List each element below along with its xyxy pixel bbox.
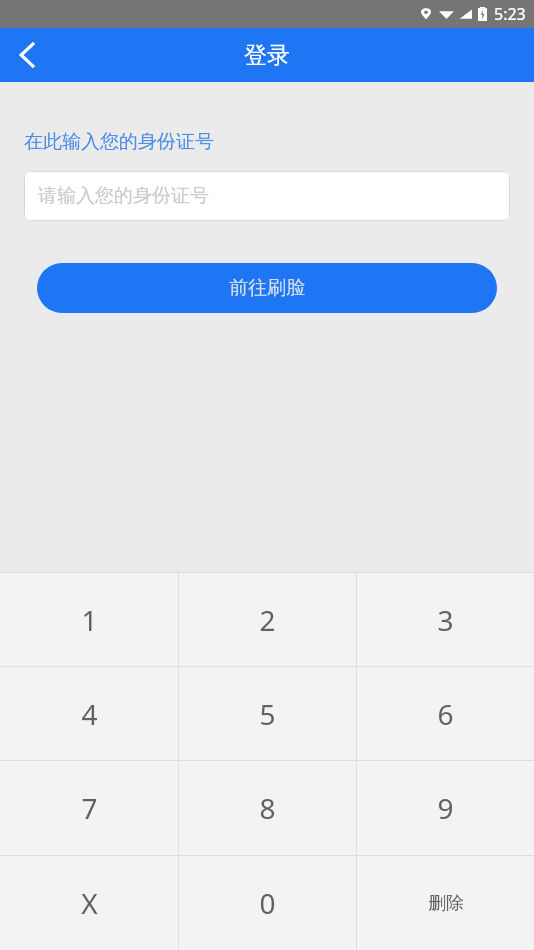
button[interactable]: Back xyxy=(0,28,54,82)
staticText: 5:23 xyxy=(494,3,526,25)
button[interactable]: 7 xyxy=(0,761,178,855)
staticText: 删除 xyxy=(428,892,464,915)
staticText: 7 xyxy=(81,789,98,827)
staticText: 2 xyxy=(259,601,276,639)
staticText: 在此输入您的身份证号 xyxy=(24,130,214,154)
button[interactable]: 请输入您的身份证号 xyxy=(24,171,510,221)
staticText: 8 xyxy=(259,789,276,827)
staticText: 1 xyxy=(81,601,98,639)
button[interactable]: X xyxy=(0,856,178,950)
button[interactable]: 3 xyxy=(357,573,534,666)
button[interactable]: 删除 xyxy=(357,856,534,950)
staticText: 请输入您的身份证号 xyxy=(38,184,209,208)
staticText: 9 xyxy=(437,789,454,827)
staticText: 6 xyxy=(437,695,454,733)
staticText: 登录 xyxy=(244,41,290,70)
button[interactable]: 1 xyxy=(0,573,178,666)
button[interactable]: 6 xyxy=(357,667,534,760)
button[interactable]: 5 xyxy=(179,667,356,760)
staticText: 4 xyxy=(81,695,98,733)
button[interactable]: 前往刷脸 xyxy=(37,263,497,313)
staticText: 5 xyxy=(259,695,276,733)
button[interactable]: 4 xyxy=(0,667,178,760)
staticText: 3 xyxy=(437,601,454,639)
staticText: 前往刷脸 xyxy=(229,276,305,300)
button[interactable]: 9 xyxy=(357,761,534,855)
button[interactable]: 0 xyxy=(179,856,356,950)
staticText: 0 xyxy=(259,884,276,922)
button[interactable]: 8 xyxy=(179,761,356,855)
button[interactable]: 2 xyxy=(179,573,356,666)
staticText: X xyxy=(81,884,98,922)
